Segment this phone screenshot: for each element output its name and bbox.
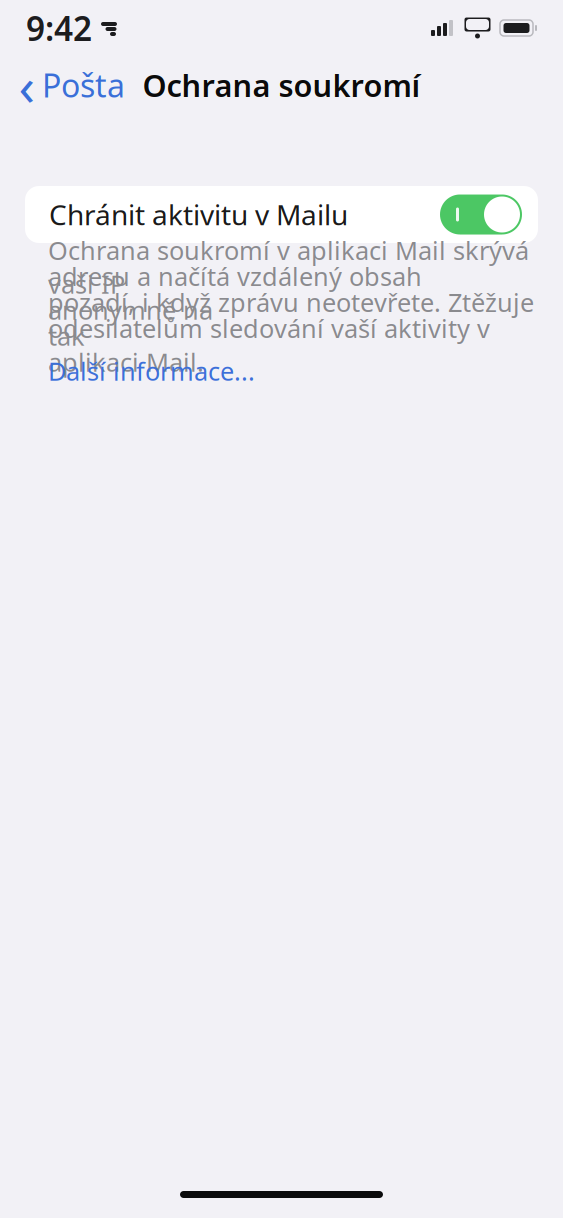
staticText: odesilatelům sledování vaší aktivity v a… — [48, 311, 490, 379]
staticText: Další informace... — [48, 354, 255, 388]
button[interactable]: Další informace... — [48, 358, 255, 384]
staticText: Pošta — [42, 64, 125, 106]
staticText: Ochrana soukromí — [142, 65, 420, 105]
staticText: Ochrana soukromí v aplikaci Mail skrývá … — [48, 233, 529, 301]
staticText: adresu a načítá vzdálený obsah anonymně … — [48, 259, 422, 327]
button[interactable]: Chránit aktivitu v Mailu — [25, 186, 538, 243]
staticText: Chránit aktivitu v Mailu — [49, 196, 348, 233]
staticText: ‹ — [18, 50, 35, 120]
staticText: 9:42 — [26, 6, 92, 50]
staticText: pozadí, i když zprávu neotevřete. Ztěžuj… — [48, 285, 534, 353]
button[interactable]: ‹ — [4, 58, 139, 112]
